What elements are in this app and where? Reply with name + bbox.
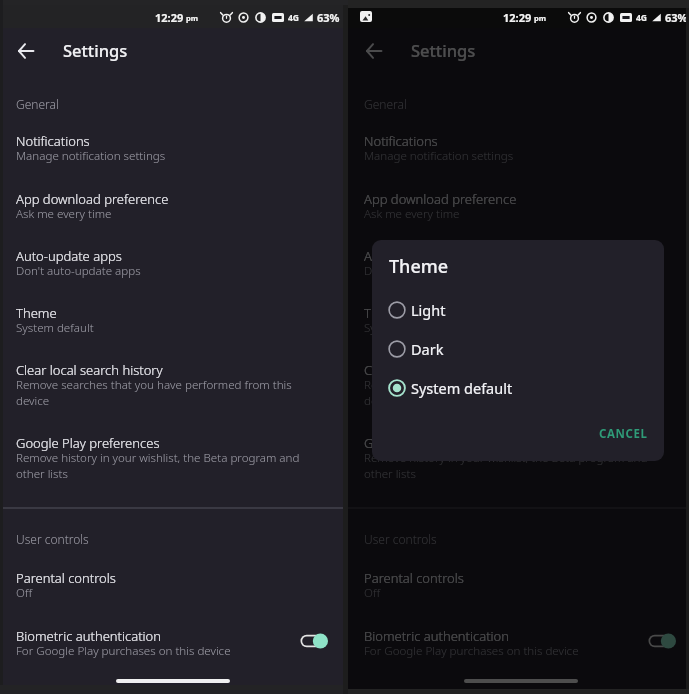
staticText: User controls — [16, 531, 89, 547]
staticText: 12:29 — [155, 10, 184, 25]
button[interactable]: CANCEL — [590, 420, 657, 448]
staticText: Biometric authentication — [16, 627, 162, 645]
button[interactable]: Biometric authentication — [348, 627, 689, 667]
staticText: Clear local search history — [364, 361, 511, 379]
staticText: Don't auto-update apps — [364, 263, 489, 279]
button[interactable]: Biometric authentication — [0, 627, 343, 667]
staticText: Light — [411, 300, 446, 320]
button[interactable]: Parental controls — [0, 569, 343, 625]
staticText: App download preference — [364, 190, 517, 208]
staticText: Remove history in your wishlist, the Bet… — [16, 450, 318, 481]
staticText: Parental controls — [16, 569, 116, 587]
staticText: Google Play preferences — [16, 434, 160, 452]
button[interactable]: Theme — [348, 304, 689, 360]
staticText: 63% — [665, 10, 688, 25]
button[interactable]: Clear local search history — [348, 361, 689, 417]
staticText: Don't auto-update apps — [16, 263, 141, 279]
staticText: System default — [16, 320, 94, 336]
button[interactable]: Google Play preferences — [0, 434, 343, 490]
staticText: Manage notification settings — [364, 148, 514, 164]
staticText: General — [364, 96, 407, 112]
staticText: pm — [534, 13, 547, 23]
staticText: Settings — [63, 39, 128, 61]
staticText: Clear local search history — [16, 361, 163, 379]
button[interactable]: Auto-update apps — [348, 247, 689, 303]
button[interactable]: Notifications — [0, 132, 343, 188]
staticText: CANCEL — [599, 426, 648, 442]
button[interactable]: Light — [372, 290, 664, 329]
staticText: Auto-update apps — [16, 247, 122, 265]
button[interactable]: Dark — [372, 329, 664, 368]
button[interactable]: Back — [358, 35, 390, 67]
staticText: Remove searches that you have performed … — [16, 377, 318, 408]
staticText: Ask me every time — [16, 206, 112, 222]
staticText: General — [16, 96, 59, 112]
button[interactable]: Auto-update apps — [0, 247, 343, 303]
staticText: 12:29 — [503, 10, 532, 25]
staticText: App download preference — [16, 190, 169, 208]
staticText: Dark — [411, 339, 444, 359]
button[interactable]: General — [348, 94, 689, 114]
staticText: Ask me every time — [364, 206, 460, 222]
staticText: pm — [186, 13, 199, 23]
button[interactable]: Theme — [0, 304, 343, 360]
staticText: Theme — [389, 254, 449, 279]
button[interactable]: User controls — [0, 529, 343, 549]
staticText: Manage notification settings — [16, 148, 166, 164]
staticText: Notifications — [16, 132, 90, 150]
staticText: Remove history in your wishlist, the Bet… — [364, 450, 666, 481]
button[interactable]: Back — [10, 35, 42, 67]
button[interactable]: General — [0, 94, 343, 114]
staticText: Auto-update apps — [364, 247, 470, 265]
staticText: Parental controls — [364, 569, 464, 587]
staticText: Theme — [364, 304, 405, 322]
staticText: For Google Play purchases on this device — [364, 643, 579, 659]
staticText: 63% — [317, 10, 340, 25]
button[interactable]: Parental controls — [348, 569, 689, 625]
staticText: Remove searches that you have performed … — [364, 377, 666, 408]
staticText: Settings — [411, 39, 476, 61]
button[interactable]: App download preference — [348, 190, 689, 246]
staticText: User controls — [364, 531, 437, 547]
button[interactable]: System default — [372, 368, 664, 407]
button[interactable]: User controls — [348, 529, 689, 549]
staticText: Biometric authentication — [364, 627, 510, 645]
staticText: Google Play preferences — [364, 434, 508, 452]
staticText: Off — [16, 585, 33, 601]
button[interactable]: App download preference — [0, 190, 343, 246]
button[interactable]: Clear local search history — [0, 361, 343, 417]
staticText: System default — [364, 320, 442, 336]
staticText: 4G — [636, 12, 648, 24]
button[interactable]: Google Play preferences — [348, 434, 689, 490]
staticText: System default — [411, 378, 513, 398]
button[interactable]: Notifications — [348, 132, 689, 188]
staticText: Off — [364, 585, 381, 601]
staticText: 4G — [288, 12, 300, 24]
staticText: Theme — [16, 304, 57, 322]
staticText: For Google Play purchases on this device — [16, 643, 231, 659]
staticText: Notifications — [364, 132, 438, 150]
